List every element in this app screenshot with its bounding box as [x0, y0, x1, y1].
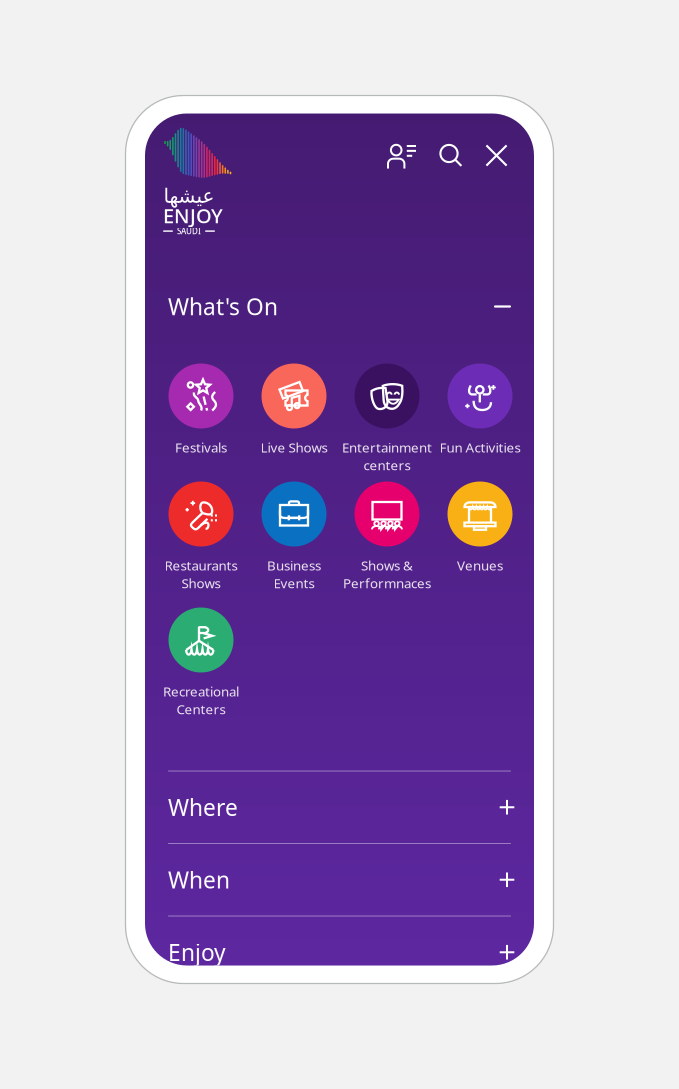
button[interactable]: Venues [433, 481, 526, 607]
staticText: Recreational [163, 682, 239, 700]
staticText: Business [267, 556, 321, 574]
staticText: Events [273, 574, 314, 592]
staticText: centers [363, 456, 410, 474]
button[interactable]: What's On [145, 279, 534, 333]
button[interactable]: Where [145, 771, 534, 843]
staticText: Performnaces [343, 574, 431, 592]
staticText: Live Shows [260, 438, 327, 456]
button[interactable]: Close [485, 144, 508, 167]
staticText: Fun Activities [439, 438, 520, 456]
staticText: عيشها [163, 184, 214, 207]
staticText: Restaurants [164, 556, 237, 574]
staticText: What's On [168, 291, 278, 321]
button[interactable]: Business [247, 481, 340, 607]
staticText: ENJOY [163, 202, 223, 229]
button[interactable]: Recreational [154, 607, 247, 725]
button[interactable]: Restaurants [154, 481, 247, 607]
staticText: Shows & [361, 556, 413, 574]
button[interactable]: When [145, 844, 534, 915]
staticText: Entertainment [342, 438, 432, 456]
button[interactable]: Enjoy [145, 916, 534, 988]
staticText: Enjoy [168, 937, 226, 967]
button[interactable]: Account [386, 141, 417, 169]
button[interactable]: Live Shows [247, 363, 340, 481]
button[interactable]: Shows & [340, 481, 433, 607]
button[interactable]: Festivals [154, 363, 247, 481]
button[interactable]: Entertainment [340, 363, 433, 481]
staticText: Shows [181, 574, 220, 592]
staticText: Centers [176, 700, 225, 718]
staticText: Where [168, 792, 238, 822]
staticText: Festivals [175, 438, 227, 456]
staticText: SAUDI [177, 226, 201, 236]
button[interactable]: Search [439, 143, 463, 167]
button[interactable]: Fun Activities [433, 363, 526, 481]
staticText: Venues [457, 556, 503, 574]
staticText: When [168, 865, 230, 895]
